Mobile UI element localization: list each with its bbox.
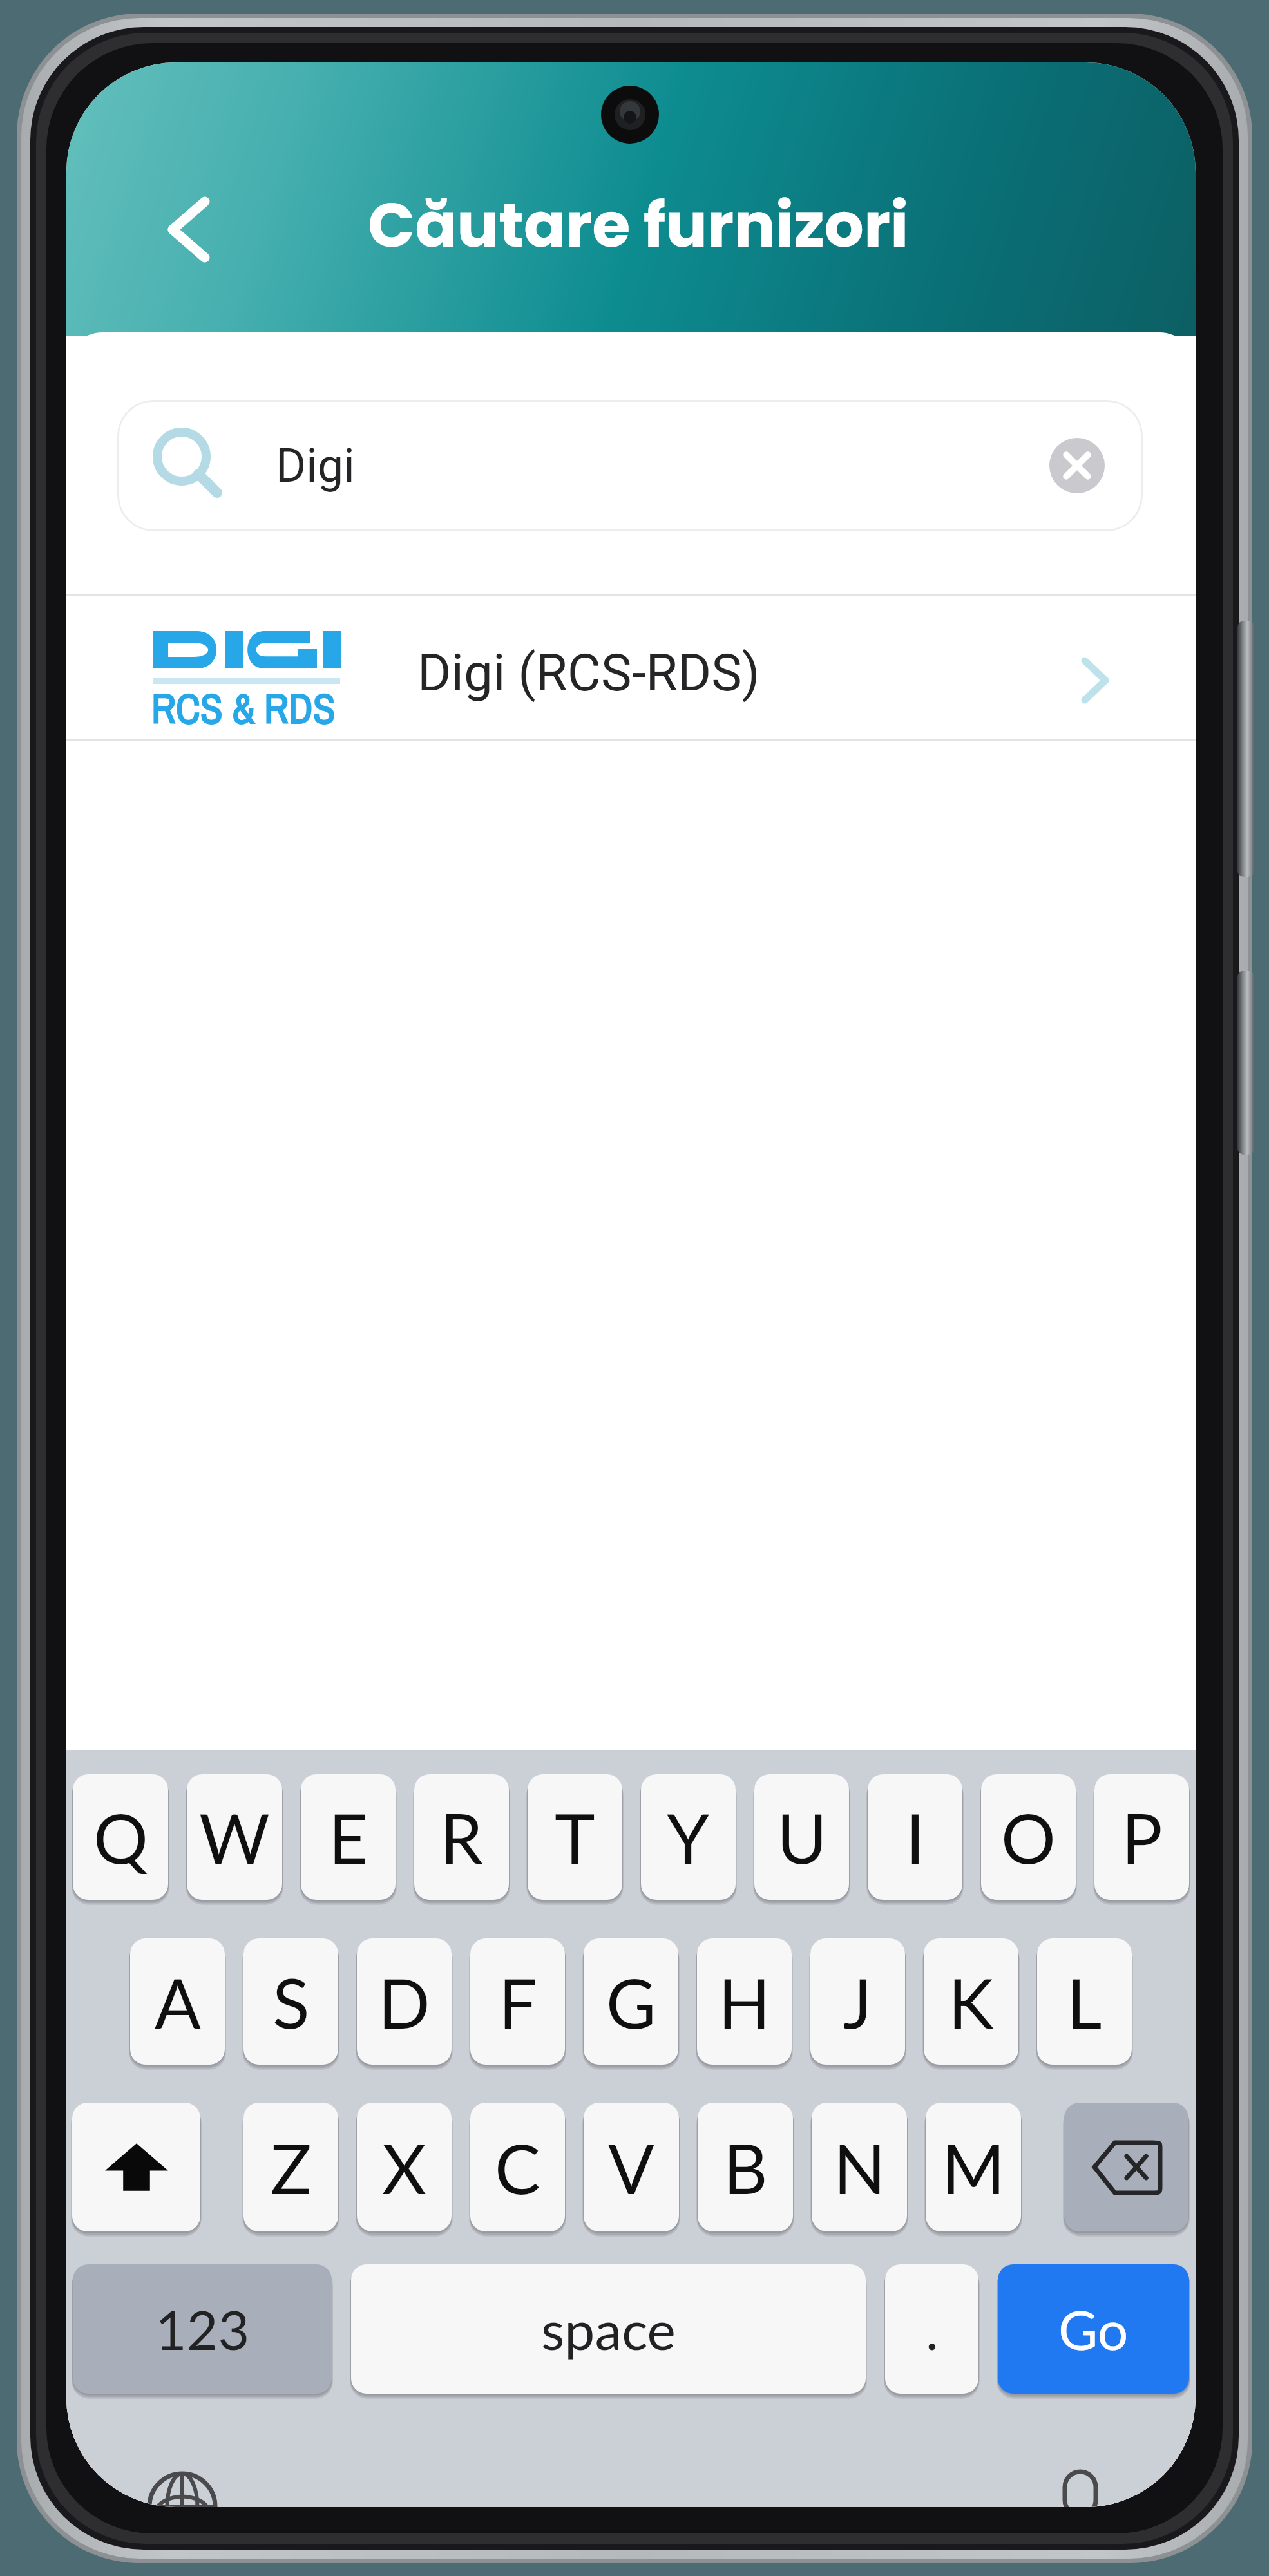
staticText: P bbox=[1121, 1796, 1163, 1878]
staticText: B bbox=[723, 2126, 768, 2208]
staticText: A bbox=[155, 1961, 201, 2043]
button[interactable]: Change keyboard language bbox=[146, 2470, 218, 2507]
staticText: U bbox=[777, 1796, 827, 1878]
staticText: S bbox=[272, 1961, 310, 2043]
staticText: space bbox=[541, 2297, 676, 2362]
button[interactable]: L bbox=[1037, 1938, 1132, 2065]
button[interactable]: U bbox=[754, 1774, 849, 1900]
staticText: D bbox=[378, 1961, 430, 2043]
button[interactable]: V bbox=[584, 2103, 679, 2231]
staticText: Z bbox=[271, 2126, 312, 2208]
staticText: N bbox=[834, 2126, 886, 2208]
staticText: H bbox=[718, 1961, 770, 2043]
button[interactable]: O bbox=[981, 1774, 1076, 1900]
staticText: 123 bbox=[155, 2297, 250, 2362]
button[interactable]: N bbox=[812, 2103, 907, 2231]
button[interactable]: K bbox=[924, 1938, 1018, 2065]
staticText: Căutare furnizori bbox=[368, 182, 909, 268]
button[interactable]: D bbox=[357, 1938, 452, 2065]
staticText: Digi (RCS-RDS) bbox=[417, 643, 760, 703]
button[interactable]: Go bbox=[998, 2264, 1189, 2394]
button[interactable]: 123 bbox=[73, 2264, 332, 2394]
button[interactable]: Digi bbox=[117, 400, 1143, 531]
staticText: C bbox=[495, 2126, 540, 2208]
staticText: Y bbox=[667, 1796, 710, 1878]
button[interactable]: R bbox=[414, 1774, 509, 1900]
button[interactable]: Back bbox=[137, 178, 240, 281]
staticText: Q bbox=[93, 1796, 148, 1878]
staticText: I bbox=[906, 1796, 925, 1878]
staticText: G bbox=[606, 1961, 656, 2043]
staticText: Digi bbox=[276, 439, 355, 493]
button[interactable]: Q bbox=[73, 1774, 168, 1900]
staticText: K bbox=[948, 1961, 994, 2043]
button[interactable]: Y bbox=[641, 1774, 736, 1900]
button[interactable]: J bbox=[810, 1938, 905, 2065]
button[interactable]: P bbox=[1094, 1774, 1189, 1900]
button[interactable]: M bbox=[926, 2103, 1021, 2231]
button[interactable]: Backspace bbox=[1064, 2103, 1188, 2231]
staticText: L bbox=[1067, 1961, 1102, 2043]
button[interactable]: Shift bbox=[72, 2103, 200, 2231]
button[interactable]: B bbox=[698, 2103, 793, 2231]
button[interactable]: A bbox=[130, 1938, 225, 2065]
button[interactable]: Voice input bbox=[1048, 2470, 1112, 2507]
button[interactable]: E bbox=[301, 1774, 396, 1900]
button[interactable]: T bbox=[528, 1774, 622, 1900]
staticText: M bbox=[942, 2126, 1006, 2208]
staticText: Go bbox=[1058, 2297, 1129, 2362]
staticText: X bbox=[382, 2126, 426, 2208]
staticText: V bbox=[608, 2126, 654, 2208]
staticText: O bbox=[1001, 1796, 1056, 1878]
staticText: T bbox=[555, 1796, 595, 1878]
button[interactable]: Z bbox=[243, 2103, 338, 2231]
staticText: E bbox=[329, 1796, 368, 1878]
button[interactable]: G bbox=[584, 1938, 678, 2065]
staticText: J bbox=[843, 1961, 872, 2043]
button[interactable]: W bbox=[187, 1774, 282, 1900]
staticText: W bbox=[199, 1796, 270, 1878]
button[interactable]: . bbox=[885, 2264, 978, 2394]
button[interactable]: Clear search bbox=[1038, 427, 1116, 504]
button[interactable]: X bbox=[357, 2103, 452, 2231]
staticText: F bbox=[499, 1961, 537, 2043]
staticText: RCS & RDS bbox=[151, 681, 336, 726]
button[interactable]: H bbox=[697, 1938, 792, 2065]
button[interactable]: S bbox=[243, 1938, 338, 2065]
button[interactable]: space bbox=[351, 2264, 866, 2394]
button[interactable]: RCS & RDS bbox=[66, 596, 1196, 739]
button[interactable]: I bbox=[868, 1774, 962, 1900]
button[interactable]: F bbox=[470, 1938, 565, 2065]
button[interactable]: C bbox=[470, 2103, 565, 2231]
staticText: . bbox=[926, 2297, 939, 2362]
staticText: R bbox=[440, 1796, 483, 1878]
